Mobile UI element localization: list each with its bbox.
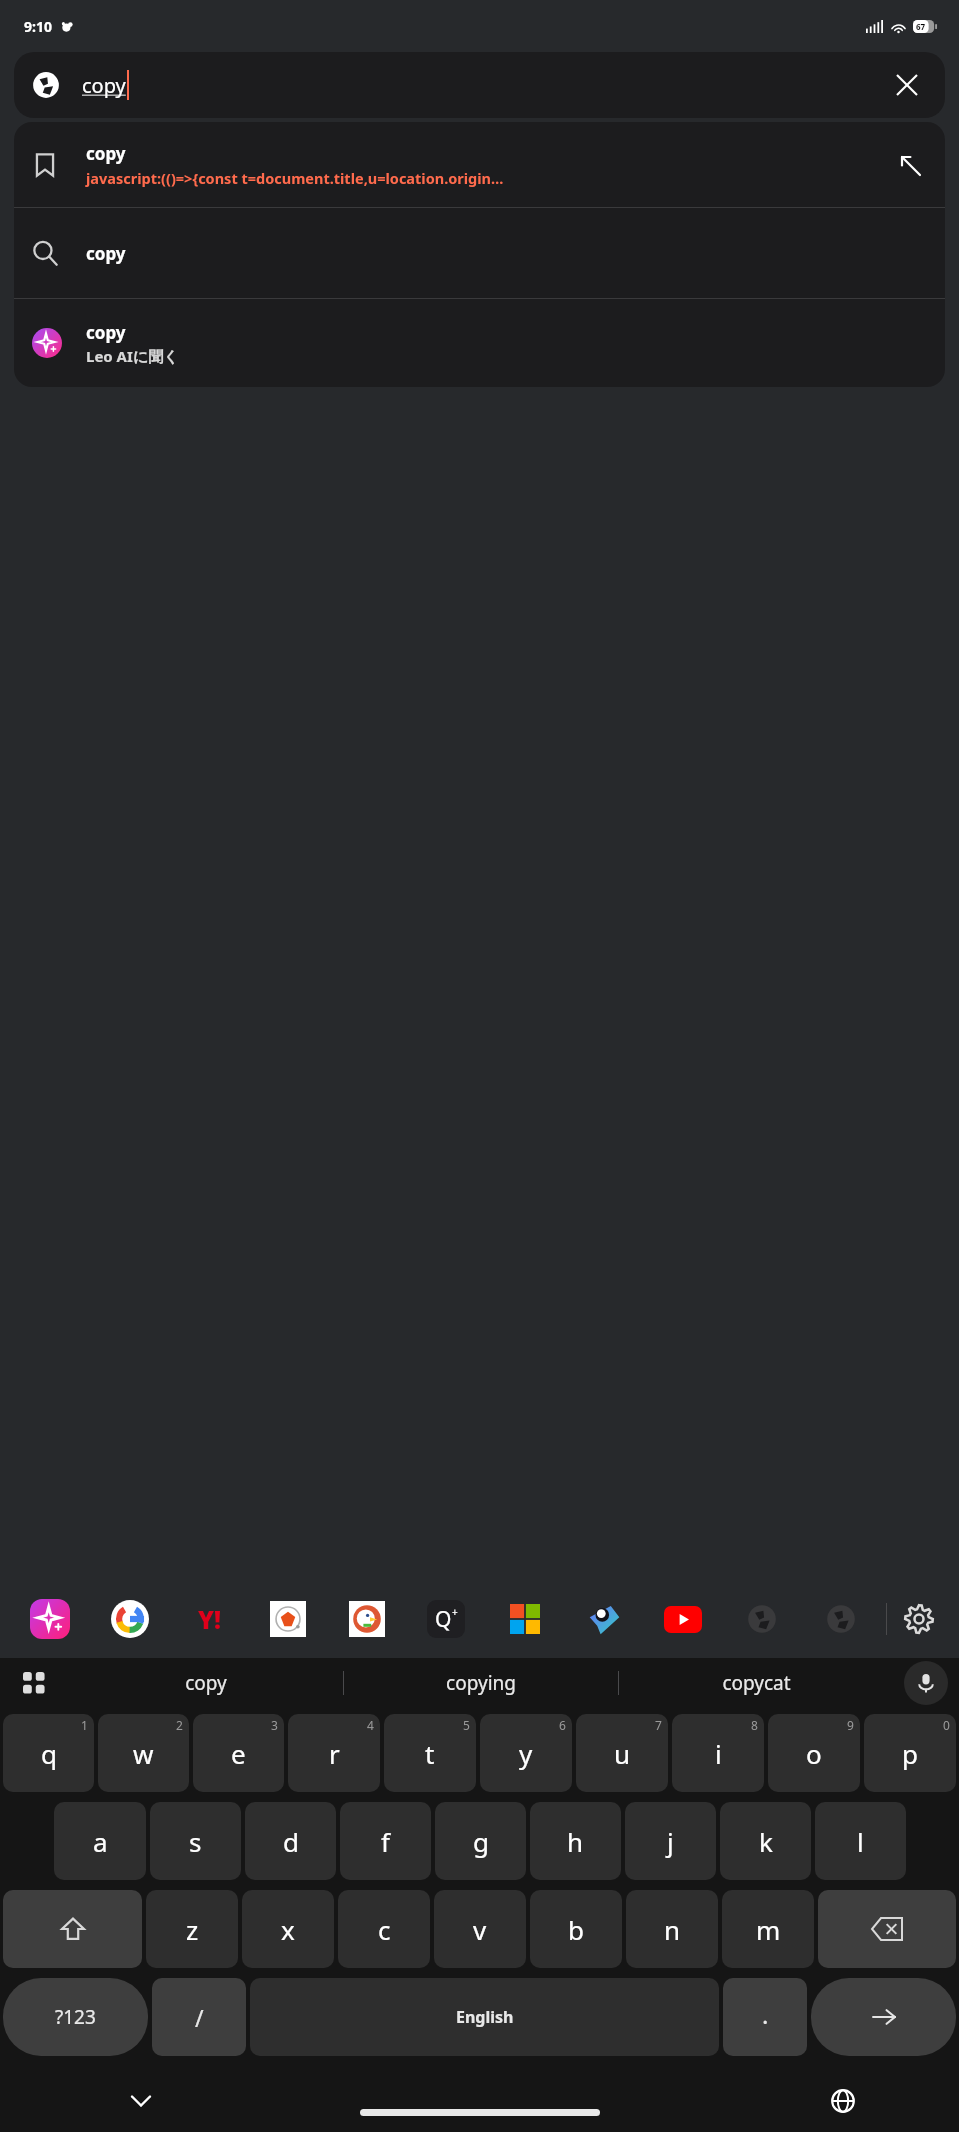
button[interactable]: Hide keyboard [120,2080,162,2122]
button[interactable]: / [152,1978,246,2056]
staticText: 2 [176,1717,183,1733]
button[interactable]: copy [14,299,945,387]
button[interactable]: Brave [248,1580,327,1658]
button[interactable]: copy [68,1658,343,1708]
staticText: u [614,1736,631,1771]
button[interactable]: YouTube [643,1580,722,1658]
staticText: x [281,1912,295,1947]
staticText: / [195,2002,204,2033]
button[interactable]: w [98,1714,189,1792]
staticText: + [452,1605,458,1619]
staticText: w [133,1736,154,1771]
button[interactable]: f [340,1802,431,1880]
staticText: j [667,1824,674,1859]
button[interactable]: Shift [3,1890,142,1968]
staticText: copy [82,72,126,99]
staticText: m [756,1912,781,1947]
button[interactable]: Clipboard [0,1658,68,1708]
button[interactable]: Search engine [801,1580,880,1658]
staticText: 8 [751,1717,758,1733]
button[interactable]: Startpage [564,1580,643,1658]
button[interactable]: k [720,1802,811,1880]
other: Search engine [32,71,60,99]
button[interactable]: English [250,1978,719,2056]
staticText: 67 [916,21,926,32]
button[interactable]: b [530,1890,622,1968]
staticText: javascript:(()=>{const t=document.title,… [86,168,504,188]
button[interactable]: Google [90,1580,169,1658]
button[interactable]: Leo AI [10,1580,90,1658]
button[interactable]: copying [344,1658,618,1708]
button[interactable]: l [815,1802,906,1880]
staticText: y [519,1736,533,1771]
button[interactable]: p [864,1714,956,1792]
staticText: copying [446,1670,516,1696]
staticText: r [329,1736,340,1771]
staticText: c [378,1912,391,1947]
staticText: 3 [271,1717,278,1733]
staticText: o [806,1736,822,1771]
staticText: Leo AIに聞く [86,346,179,366]
staticText: z [186,1912,199,1947]
button[interactable]: o [768,1714,860,1792]
button[interactable]: Clear [887,65,927,105]
button[interactable]: h [530,1802,621,1880]
button[interactable]: Settings [893,1593,945,1645]
button[interactable]: Yahoo [169,1580,248,1658]
staticText: d [283,1824,299,1859]
button[interactable]: z [146,1890,238,1968]
staticText: 4 [367,1717,374,1733]
button[interactable]: s [150,1802,241,1880]
button[interactable]: Search engine [722,1580,801,1658]
staticText: 5 [463,1717,470,1733]
button[interactable]: x [242,1890,334,1968]
button[interactable]: Voice input [893,1658,959,1708]
button[interactable]: Qwant [406,1580,485,1658]
button[interactable]: . [723,1978,807,2056]
staticText: 1 [81,1717,88,1733]
staticText: . [762,1998,769,2031]
staticText: copy [185,1670,227,1696]
button[interactable]: e [193,1714,284,1792]
staticText: 9 [847,1717,854,1733]
button[interactable]: a [54,1802,146,1880]
button[interactable]: Enter [811,1978,956,2056]
button[interactable]: v [434,1890,526,1968]
button[interactable]: r [288,1714,380,1792]
button[interactable]: g [435,1802,526,1880]
staticText: k [759,1824,773,1859]
button[interactable]: d [245,1802,336,1880]
button[interactable]: m [722,1890,814,1968]
staticText: copy [86,142,126,165]
button[interactable]: q [3,1714,94,1792]
staticText: copy [86,321,126,344]
staticText: l [857,1824,864,1859]
button[interactable]: y [480,1714,572,1792]
staticText: g [473,1824,489,1859]
staticText: i [715,1736,722,1771]
button[interactable]: copycat [619,1658,893,1708]
button[interactable]: n [626,1890,718,1968]
button[interactable]: i [672,1714,764,1792]
button[interactable]: Bing [485,1580,564,1658]
staticText: 9:10 [24,17,52,36]
button[interactable]: ?123 [3,1978,148,2056]
button[interactable]: Change language [822,2080,864,2122]
staticText: copy [86,242,126,265]
button[interactable]: copy [14,122,945,207]
button[interactable]: DuckDuckGo [327,1580,406,1658]
button[interactable]: j [625,1802,716,1880]
staticText: t [425,1736,435,1771]
staticText: p [902,1736,918,1771]
button[interactable]: u [576,1714,668,1792]
staticText: 0 [943,1717,950,1733]
button[interactable]: Backspace [818,1890,956,1968]
button[interactable]: c [338,1890,430,1968]
staticText: v [473,1912,487,1947]
staticText: f [381,1824,390,1859]
button[interactable]: copy [14,208,945,298]
button[interactable]: Edit query [893,148,927,182]
button[interactable]: Search engine [14,52,945,118]
staticText: q [41,1736,57,1771]
button[interactable]: t [384,1714,476,1792]
